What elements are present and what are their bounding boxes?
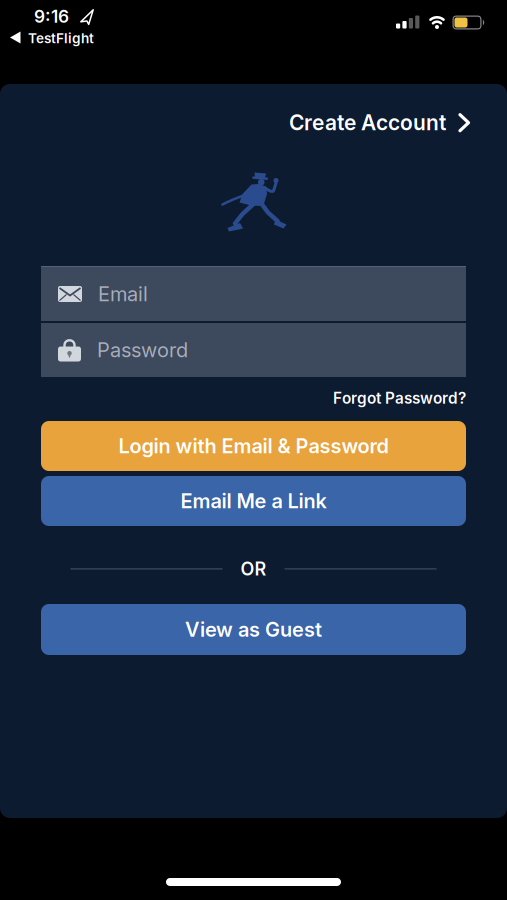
staticText: Create Account <box>289 110 446 135</box>
staticText: Email Me a Link <box>180 489 326 513</box>
button[interactable]: Forgot Password? <box>333 389 466 408</box>
staticText: 9:16 <box>34 6 69 27</box>
staticText: OR <box>240 558 266 580</box>
button[interactable]: Create Account <box>289 110 471 135</box>
button[interactable]: Email <box>41 267 466 321</box>
staticText: Password <box>97 338 188 362</box>
button[interactable]: Login with Email & Password <box>41 421 466 471</box>
staticText: Login with Email & Password <box>118 434 388 458</box>
staticText: Email <box>98 282 148 306</box>
staticText: View as Guest <box>185 617 322 642</box>
button[interactable]: Email Me a Link <box>41 476 466 526</box>
button[interactable]: Password <box>41 323 466 377</box>
staticText: TestFlight <box>28 30 94 46</box>
button[interactable]: View as Guest <box>41 604 466 655</box>
staticText: Forgot Password? <box>333 389 466 408</box>
